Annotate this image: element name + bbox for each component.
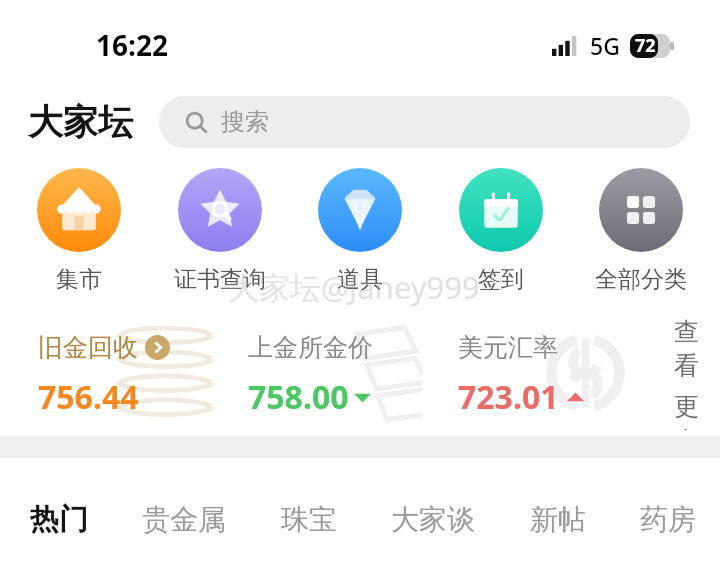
staticText: 新帖 (530, 502, 586, 537)
staticText: 758.00 (248, 375, 349, 419)
staticText: 珠宝 (281, 502, 337, 537)
staticText: 大家坛@Janey999 (228, 266, 480, 308)
button[interactable]: 热门 (22, 489, 96, 550)
staticText: 集市 (56, 265, 102, 294)
staticText: 道具 (337, 265, 383, 294)
staticText: 证书查询 (174, 265, 266, 294)
button[interactable]: 药房 (632, 490, 704, 549)
staticText: 16:22 (96, 26, 168, 64)
staticText: 查看 (674, 316, 720, 382)
staticText: 723.01 (458, 375, 559, 419)
staticText: 5G (590, 30, 620, 61)
staticText: 贵金属 (142, 502, 226, 537)
staticText: 大家坛 (28, 100, 133, 144)
button[interactable]: 新帖 (522, 490, 594, 549)
button[interactable]: 道具 (297, 168, 423, 294)
button[interactable]: 集市 (16, 168, 142, 294)
button[interactable]: 上金所金价 (228, 316, 422, 430)
staticText: 上金所金价 (248, 332, 373, 363)
staticText: 全部分类 (595, 265, 687, 294)
staticText: 756.44 (38, 375, 139, 419)
staticText: 更多 (674, 391, 720, 430)
staticText: 72 (635, 33, 656, 58)
button[interactable]: 贵金属 (134, 490, 234, 549)
button[interactable]: 证书查询 (157, 168, 283, 294)
staticText: 大家谈 (391, 502, 475, 537)
button[interactable]: 珠宝 (273, 490, 345, 549)
staticText: 药房 (640, 502, 696, 537)
button[interactable]: 大家谈 (383, 490, 483, 549)
staticText: 搜索 (221, 107, 269, 137)
button[interactable]: 查看 (648, 316, 720, 430)
staticText: 热门 (30, 501, 88, 538)
button[interactable]: 美元汇率 (438, 316, 632, 430)
button[interactable]: 旧金回收 (18, 316, 212, 430)
staticText: 旧金回收 (38, 332, 138, 363)
button[interactable]: 签到 (438, 168, 564, 294)
staticText: 签到 (478, 265, 524, 294)
button[interactable]: 搜索 (159, 96, 690, 148)
button[interactable]: 全部分类 (578, 168, 704, 294)
staticText: 美元汇率 (458, 332, 558, 363)
